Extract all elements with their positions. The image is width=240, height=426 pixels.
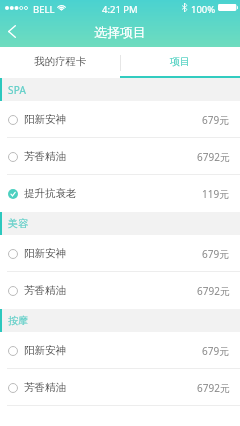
button[interactable]: Back: [0, 16, 28, 46]
staticText: 我的疗程卡: [34, 55, 87, 68]
staticText: SPA: [8, 83, 27, 97]
button[interactable]: 提升抗衰老: [0, 175, 240, 212]
staticText: 4:21 PM: [102, 3, 138, 16]
button[interactable]: 阳新安神: [0, 235, 240, 272]
staticText: 6792元: [197, 150, 230, 164]
staticText: 阳新安神: [24, 113, 66, 126]
staticText: 679元: [202, 247, 230, 261]
button[interactable]: 我的疗程卡: [0, 47, 120, 76]
staticText: 679元: [202, 113, 230, 127]
staticText: 679元: [202, 344, 230, 358]
staticText: 提升抗衰老: [24, 187, 77, 200]
staticText: 100%: [191, 3, 216, 16]
button[interactable]: 芳香精油: [0, 272, 240, 309]
staticText: 芳香精油: [24, 381, 66, 394]
button[interactable]: 芳香精油: [0, 369, 240, 406]
staticText: 芳香精油: [24, 284, 66, 297]
staticText: 阳新安神: [24, 344, 66, 357]
staticText: BELL: [33, 3, 55, 16]
staticText: 按摩: [8, 314, 29, 327]
staticText: 芳香精油: [24, 150, 66, 163]
staticText: 选择项目: [94, 24, 146, 40]
staticText: 阳新安神: [24, 247, 66, 260]
staticText: 美容: [8, 217, 29, 230]
button[interactable]: 芳香精油: [0, 138, 240, 175]
button[interactable]: 阳新安神: [0, 332, 240, 369]
button[interactable]: 阳新安神: [0, 101, 240, 138]
button[interactable]: 项目: [120, 47, 240, 76]
staticText: 119元: [202, 187, 230, 201]
staticText: 6792元: [197, 381, 230, 395]
staticText: 6792元: [197, 284, 230, 298]
staticText: 项目: [170, 55, 190, 68]
